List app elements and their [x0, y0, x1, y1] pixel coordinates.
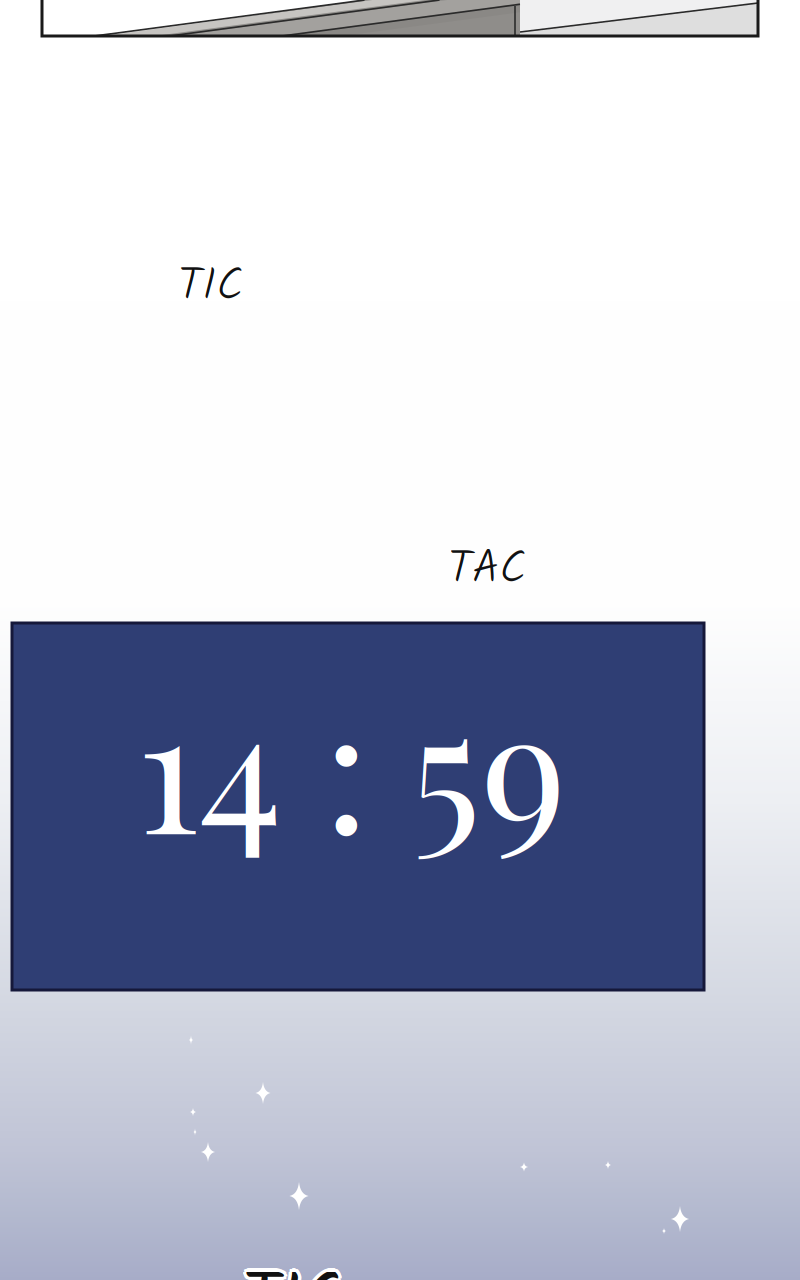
- staticText: TIC: [245, 1248, 345, 1280]
- staticText: TIC: [239, 1245, 339, 1280]
- staticText: TIC: [239, 1250, 339, 1280]
- staticText: 14 : 59: [137, 652, 567, 876]
- staticText: TAC: [448, 534, 526, 606]
- staticText: TIC: [242, 1244, 342, 1280]
- staticText: TIC: [238, 1248, 338, 1280]
- staticText: TIC: [242, 1251, 342, 1280]
- staticText: TIC: [244, 1250, 344, 1280]
- staticText: TIC: [242, 1248, 342, 1280]
- staticText: TIC: [244, 1245, 344, 1280]
- staticText: TIC: [178, 251, 243, 323]
